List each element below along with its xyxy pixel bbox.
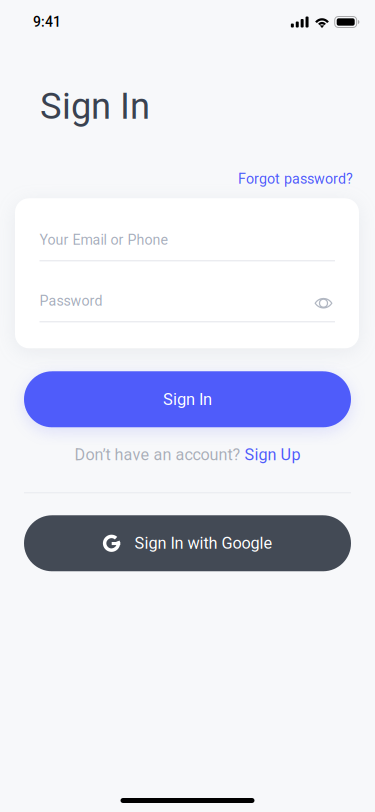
button[interactable]: Sign In with Google <box>24 515 351 571</box>
staticText: Your Email or Phone <box>39 231 168 248</box>
button[interactable]: Sign Up <box>244 445 300 464</box>
staticText: Don’t have an account? <box>74 445 244 464</box>
staticText: Sign In <box>163 390 212 409</box>
staticText: Password <box>39 292 102 309</box>
staticText: Sign In <box>40 85 150 127</box>
staticText: Forgot password? <box>238 170 353 187</box>
button[interactable]: Forgot password? <box>238 166 375 191</box>
staticText: 9:41 <box>33 14 61 30</box>
staticText: Sign In with Google <box>134 534 272 553</box>
staticText: Sign Up <box>244 445 300 464</box>
button[interactable]: Show password <box>39 261 335 322</box>
button[interactable]: Sign In <box>24 371 351 427</box>
